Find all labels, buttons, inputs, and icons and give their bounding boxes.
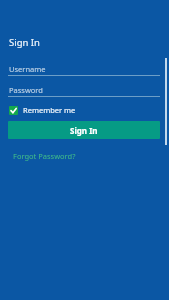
staticText: Sign In (70, 125, 98, 136)
button[interactable]: Forgot Password? (13, 151, 76, 161)
button[interactable]: Password (8, 84, 160, 97)
staticText: Forgot Password? (13, 151, 76, 161)
staticText: Username (9, 64, 46, 74)
staticText: Password (9, 85, 43, 95)
staticText: Sign In (9, 36, 40, 49)
staticText: Remember me (23, 105, 76, 115)
button[interactable]: Username (8, 63, 160, 76)
other: Remember me checkbox (9, 106, 18, 115)
button[interactable]: Sign In (8, 121, 160, 139)
button[interactable]: Remember me checkbox (9, 105, 76, 115)
